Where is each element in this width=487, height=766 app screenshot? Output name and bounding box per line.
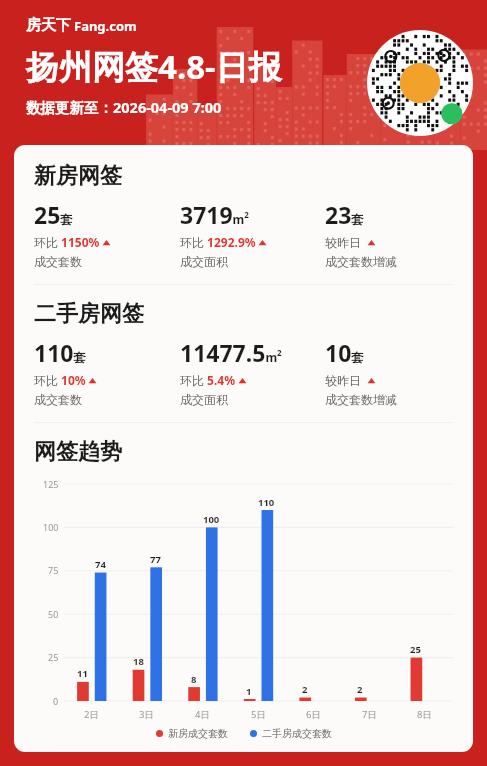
button[interactable]: 11477.5m2 bbox=[180, 337, 325, 407]
staticText: 25 bbox=[48, 651, 59, 663]
staticText: 成交套数增减 bbox=[325, 254, 397, 269]
staticText: 成交套数 bbox=[34, 392, 82, 407]
staticText: 3719m2 bbox=[180, 199, 249, 230]
staticText: 5日 bbox=[251, 708, 266, 721]
staticText: 成交面积 bbox=[180, 392, 228, 407]
button[interactable]: 新房成交套数 bbox=[156, 727, 228, 740]
button[interactable]: 110套 bbox=[34, 337, 180, 407]
staticText: 环比 1292.9% bbox=[180, 234, 256, 250]
staticText: Fang.com bbox=[74, 17, 137, 35]
staticText: 数据更新至：2026-04-09 7:00 bbox=[26, 97, 222, 117]
staticText: 6日 bbox=[306, 708, 321, 721]
button[interactable]: 23套 bbox=[325, 199, 453, 269]
staticText: 77 bbox=[150, 553, 161, 566]
staticText: 25 bbox=[410, 643, 421, 656]
staticText: 11 bbox=[77, 667, 88, 680]
staticText: 74 bbox=[95, 558, 106, 571]
staticText: 成交套数 bbox=[34, 254, 82, 269]
staticText: 10套 bbox=[325, 337, 364, 368]
staticText: 18 bbox=[133, 655, 144, 668]
staticText: 8日 bbox=[417, 708, 432, 721]
button[interactable]: 3719m2 bbox=[180, 199, 325, 269]
staticText: 网签趋势 bbox=[34, 438, 122, 466]
staticText: 二手房成交套数 bbox=[262, 727, 332, 740]
staticText: 0 bbox=[53, 695, 59, 707]
staticText: 较昨日 bbox=[325, 372, 365, 388]
staticText: 环比 1150% bbox=[34, 234, 100, 250]
staticText: 2 bbox=[357, 683, 363, 696]
staticText: 50 bbox=[48, 608, 59, 620]
staticText: 125 bbox=[43, 478, 59, 490]
button[interactable]: 25套 bbox=[34, 199, 180, 269]
staticText: 新房成交套数 bbox=[168, 727, 228, 740]
staticText: 8 bbox=[191, 673, 197, 686]
staticText: 4日 bbox=[195, 708, 210, 721]
staticText: 110套 bbox=[34, 337, 86, 368]
staticText: 25套 bbox=[34, 199, 73, 230]
staticText: 75 bbox=[48, 564, 59, 576]
staticText: 成交套数增减 bbox=[325, 392, 397, 407]
staticText: 较昨日 bbox=[325, 234, 365, 250]
staticText: 11477.5m2 bbox=[180, 337, 282, 368]
staticText: 二手房网签 bbox=[34, 300, 144, 328]
staticText: 环比 10% bbox=[34, 372, 86, 388]
staticText: 100 bbox=[203, 513, 220, 526]
staticText: 环比 5.4% bbox=[180, 372, 236, 388]
staticText: 2日 bbox=[84, 708, 99, 721]
button[interactable]: 二维码 扫码关注 bbox=[367, 30, 473, 136]
staticText: 100 bbox=[43, 521, 59, 533]
button[interactable]: 10套 bbox=[325, 337, 453, 407]
staticText: 新房网签 bbox=[34, 162, 122, 190]
staticText: 23套 bbox=[325, 199, 364, 230]
staticText: 2 bbox=[302, 683, 308, 696]
staticText: 扬州网签4.8-日报 bbox=[26, 44, 282, 89]
staticText: 3日 bbox=[139, 708, 154, 721]
staticText: 110 bbox=[258, 496, 275, 509]
staticText: 1 bbox=[246, 685, 252, 698]
staticText: 房天下 bbox=[26, 16, 71, 35]
staticText: 成交面积 bbox=[180, 254, 228, 269]
staticText: 7日 bbox=[362, 708, 377, 721]
button[interactable]: 二手房成交套数 bbox=[250, 727, 332, 740]
